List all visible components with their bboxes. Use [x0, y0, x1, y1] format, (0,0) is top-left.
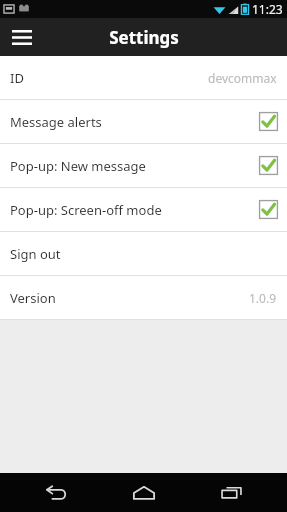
button[interactable]: Recent apps: [200, 473, 262, 512]
staticText: Pop-up: New message: [10, 157, 146, 175]
staticText: Pop-up: Screen-off mode: [10, 201, 162, 219]
staticText: Version: [10, 289, 56, 307]
staticText: 1.0.9: [249, 290, 277, 306]
button[interactable]: Open navigation menu: [0, 18, 44, 56]
button[interactable]: Back: [25, 473, 87, 512]
staticText: Sign out: [10, 245, 61, 263]
staticText: devcommax: [208, 70, 277, 86]
button[interactable]: Pop-up: Screen-off mode: [0, 188, 287, 231]
button[interactable]: Message alerts: [0, 100, 287, 143]
staticText: Message alerts: [10, 113, 102, 131]
staticText: Settings: [109, 26, 179, 49]
staticText: 11:23: [252, 1, 283, 17]
button[interactable]: Version: [0, 276, 287, 319]
button[interactable]: Pop-up: New message: [0, 144, 287, 187]
button[interactable]: Sign out: [0, 232, 287, 275]
button[interactable]: Home: [113, 473, 175, 512]
staticText: ID: [10, 69, 24, 87]
button[interactable]: ID: [0, 56, 287, 99]
